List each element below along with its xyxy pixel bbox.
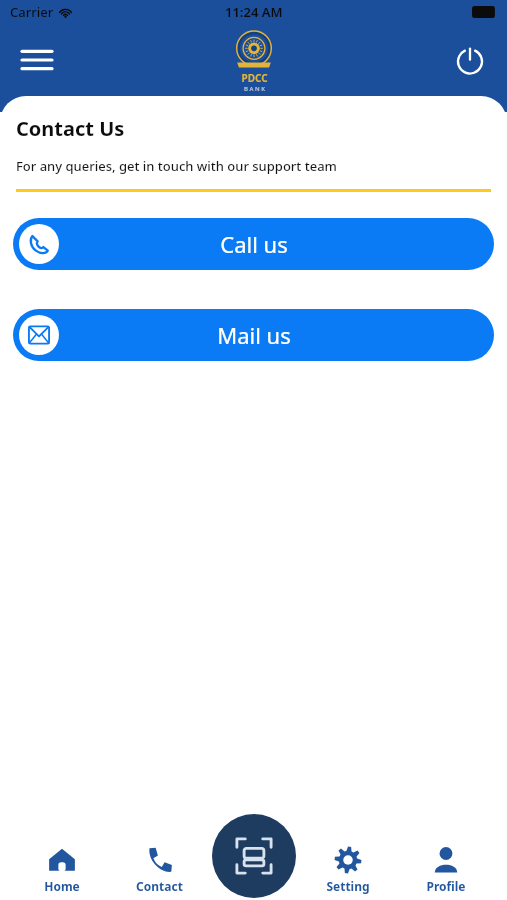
staticText: Profile [426,878,466,894]
staticText: For any queries, get in touch with our s… [16,157,337,175]
staticText: Setting [326,878,370,894]
button[interactable]: Profile [410,846,482,900]
staticText: 11:24 AM [225,3,283,21]
staticText: Contact [136,878,183,894]
staticText: Contact Us [16,115,125,142]
button[interactable]: Logout [447,37,493,83]
button[interactable]: Mail us [13,309,494,361]
button[interactable]: Contact [123,846,195,900]
staticText: Carrier [10,3,54,21]
button[interactable]: Menu [14,37,60,83]
staticText: Mail us [217,320,291,350]
staticText: PDCC [241,71,268,85]
button[interactable]: Call us [13,218,494,270]
staticText: Call us [220,229,288,259]
button[interactable]: Home [26,846,98,900]
button[interactable]: Setting [312,846,384,900]
button[interactable]: Scan [212,814,296,898]
staticText: Home [44,878,80,894]
staticText: B A N K [244,85,265,91]
